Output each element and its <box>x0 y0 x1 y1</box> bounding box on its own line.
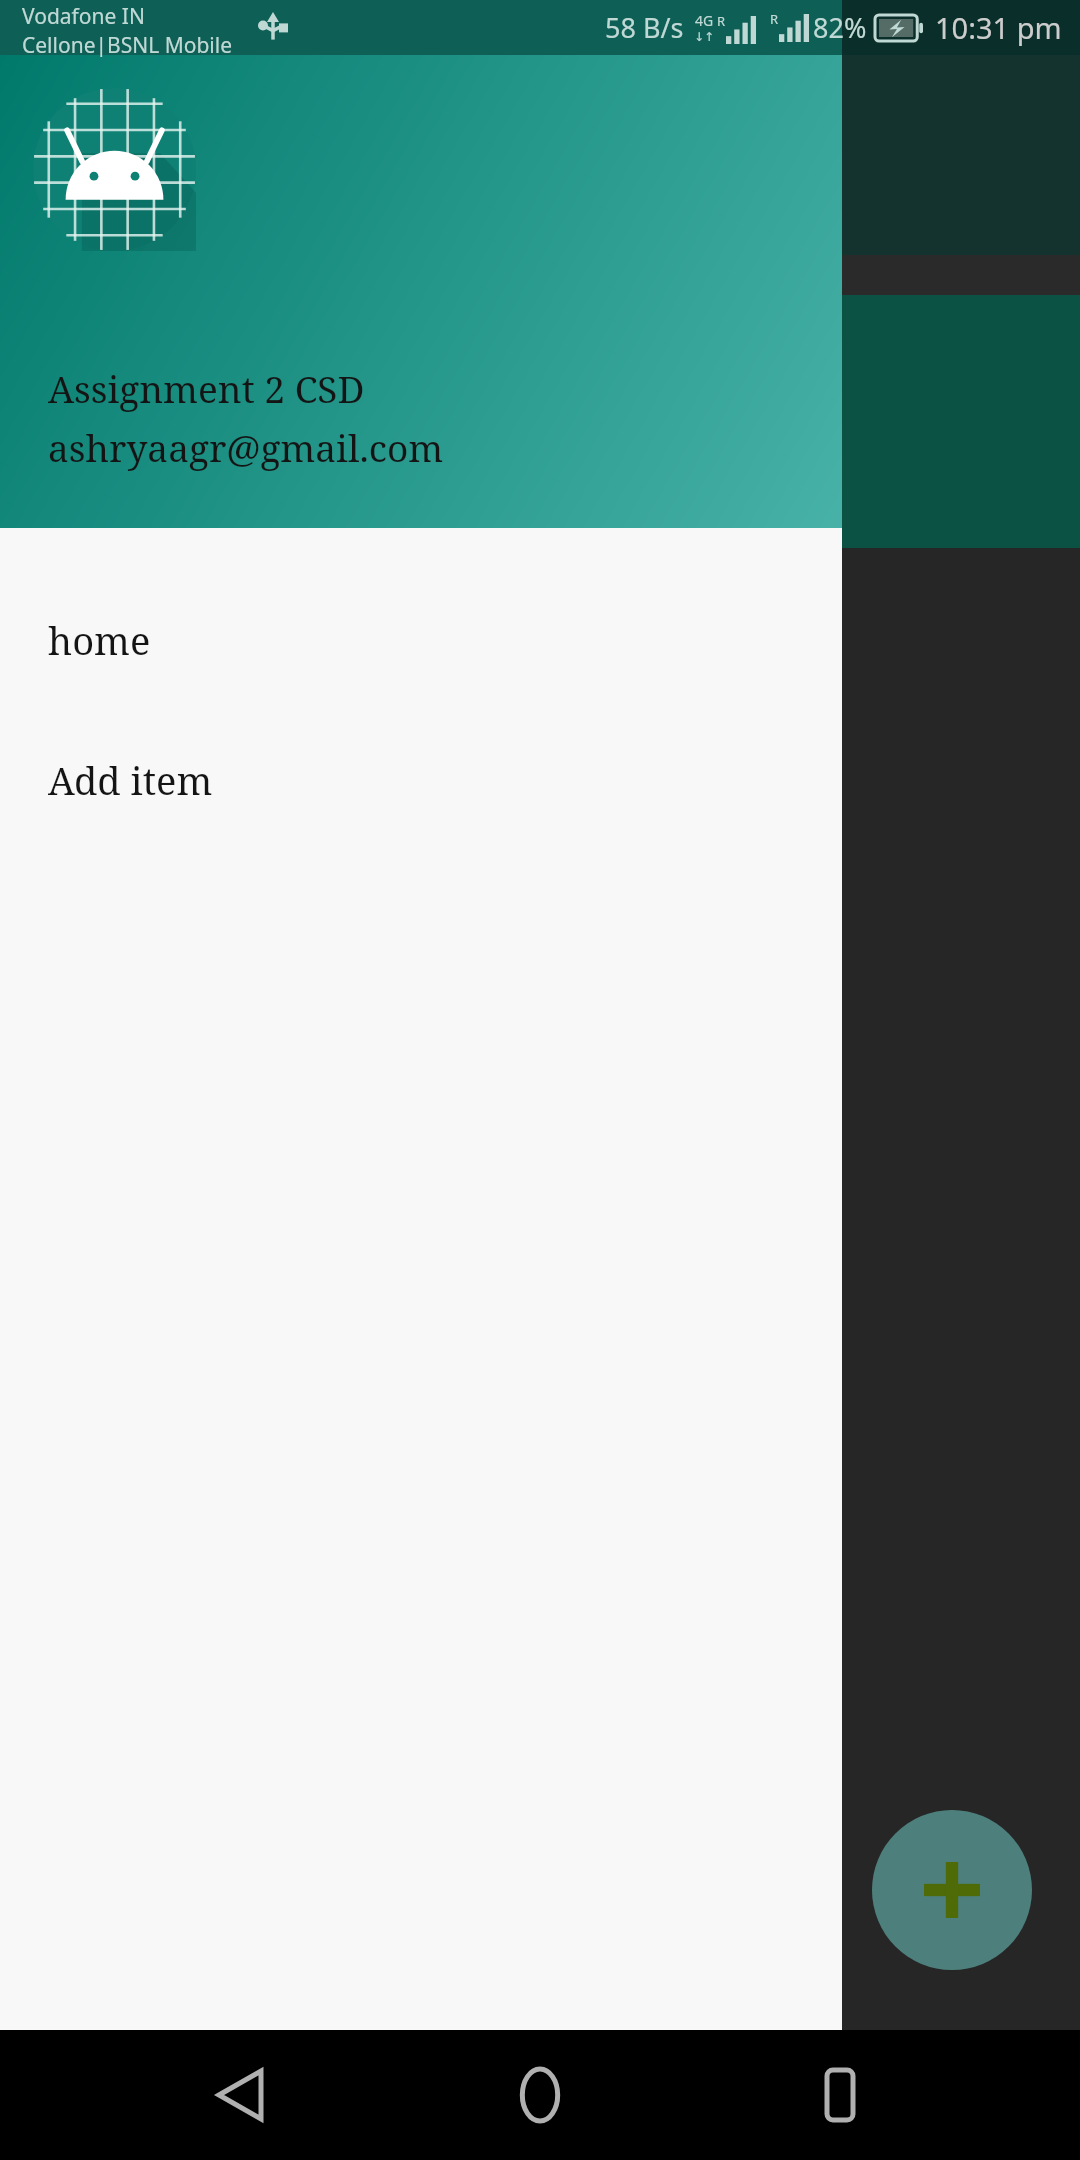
staticText: 10:31 pm <box>935 8 1062 47</box>
button[interactable]: Back <box>180 2035 300 2155</box>
staticText: 4G <box>695 11 714 30</box>
staticText: Vodafone IN <box>22 2 145 31</box>
button[interactable]: home <box>0 570 842 710</box>
button[interactable]: Recents <box>780 2035 900 2155</box>
staticText: Assignment 2 CSD <box>48 363 365 413</box>
staticText: home <box>48 614 151 666</box>
staticText: 82% <box>813 9 867 46</box>
staticText: R <box>770 10 779 28</box>
button[interactable]: Add item <box>0 710 842 850</box>
staticText: ashryaagr@gmail.com <box>48 422 444 472</box>
staticText: ↓↑ <box>694 30 715 44</box>
staticText: R <box>717 12 726 30</box>
staticText: Add item <box>48 754 213 806</box>
button[interactable]: Add <box>872 1810 1032 1970</box>
button[interactable]: Home <box>480 2035 600 2155</box>
staticText: 58 B/s <box>605 9 684 46</box>
staticText: Cellone|BSNL Mobile <box>22 31 232 57</box>
